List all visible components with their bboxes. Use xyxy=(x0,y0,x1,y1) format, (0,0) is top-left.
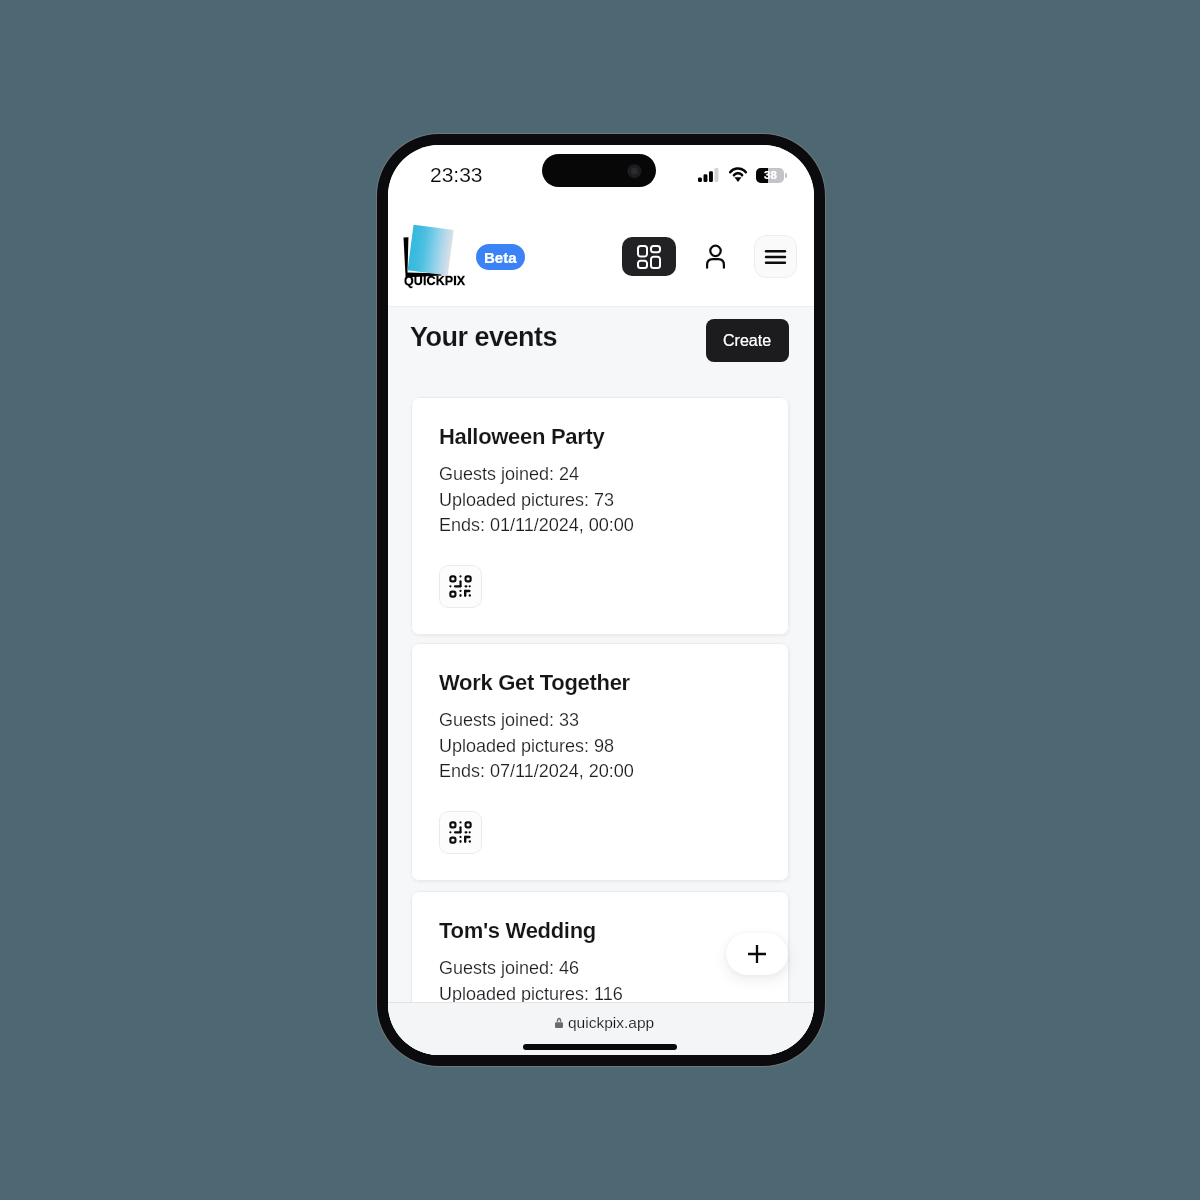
button[interactable]: Work Get Together xyxy=(411,643,789,881)
staticText: Uploaded pictures: 73 xyxy=(439,490,615,510)
button[interactable]: Show QR code xyxy=(439,565,482,608)
button[interactable]: Tom's Wedding xyxy=(411,891,789,1055)
staticText: Guests joined: 46 xyxy=(439,958,580,978)
staticText: Uploaded pictures: 98 xyxy=(439,736,615,756)
staticText: 23:33 xyxy=(430,163,483,186)
button[interactable]: Show QR code xyxy=(439,811,482,854)
button[interactable]: Add event xyxy=(726,933,788,975)
button[interactable]: Gallery view xyxy=(622,237,676,276)
button[interactable]: Beta xyxy=(476,244,525,270)
staticText: quickpix.app xyxy=(568,1014,655,1031)
staticText: Ends: 01/11/2024, 00:00 xyxy=(439,515,634,535)
staticText: Your events xyxy=(410,322,558,352)
button[interactable]: Account xyxy=(698,237,732,276)
staticText: Uploaded pictures: 116 xyxy=(439,984,623,1004)
button[interactable]: Halloween Party xyxy=(411,397,789,635)
staticText: Beta xyxy=(484,249,517,266)
button[interactable]: Create xyxy=(706,319,789,362)
staticText: Halloween Party xyxy=(439,424,605,449)
staticText: QUICKPIX xyxy=(404,274,466,288)
staticText: Tom's Wedding xyxy=(439,918,596,943)
staticText: 38 xyxy=(764,169,777,182)
staticText: Guests joined: 24 xyxy=(439,464,580,484)
button[interactable]: Menu xyxy=(754,235,797,278)
staticText: Ends: 07/11/2024, 20:00 xyxy=(439,761,634,781)
staticText: Work Get Together xyxy=(439,670,630,695)
staticText: Guests joined: 33 xyxy=(439,710,580,730)
staticText: Create xyxy=(723,332,772,350)
